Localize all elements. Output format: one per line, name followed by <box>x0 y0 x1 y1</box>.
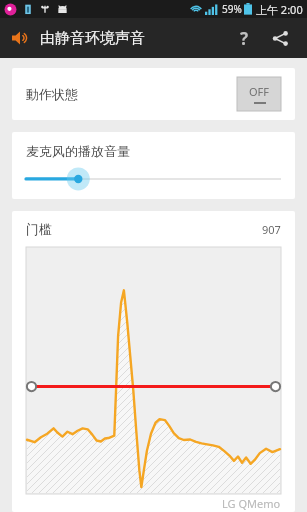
button[interactable]: Share <box>263 21 297 55</box>
button[interactable]: Help <box>227 21 261 55</box>
staticText: 59% <box>222 2 242 16</box>
staticText: LG QMemo <box>222 496 281 511</box>
button[interactable]: OFF <box>237 77 281 111</box>
button[interactable]: Microphone playback volume slider <box>12 132 295 199</box>
staticText: 由静音环境声音 <box>40 29 145 48</box>
staticText: 门槛 <box>26 221 52 237</box>
staticText: 麦克风的播放音量 <box>26 143 130 159</box>
staticText: 動作状態 <box>26 86 78 102</box>
staticText: 907 <box>262 222 281 237</box>
staticText: ? <box>240 27 249 50</box>
staticText: OFF <box>249 84 270 99</box>
staticText: 上午 2:00 <box>256 2 303 17</box>
